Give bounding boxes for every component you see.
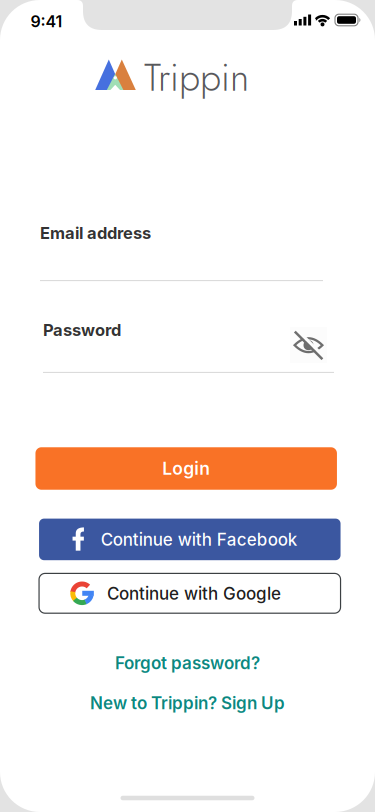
button[interactable]: Forgot password? [115, 653, 260, 673]
staticText: 9:41 [30, 12, 62, 31]
staticText: Password [43, 320, 121, 340]
staticText: Continue with Google [107, 583, 281, 604]
button[interactable]: Show password [290, 327, 327, 363]
staticText: Continue with Facebook [101, 529, 298, 550]
button[interactable]: Login [35, 447, 337, 490]
staticText: Email address [40, 223, 151, 243]
button[interactable]: Email address [40, 211, 323, 281]
button[interactable]: Continue with Facebook [39, 519, 341, 560]
staticText: New to Trippin? Sign Up [90, 693, 285, 713]
staticText: Forgot password? [115, 653, 260, 673]
staticText: Login [162, 458, 210, 479]
button[interactable]: Password [43, 305, 334, 373]
button[interactable]: Continue with Google [39, 573, 341, 613]
button[interactable]: New to Trippin? Sign Up [90, 693, 285, 713]
staticText: Trippin [144, 50, 249, 105]
